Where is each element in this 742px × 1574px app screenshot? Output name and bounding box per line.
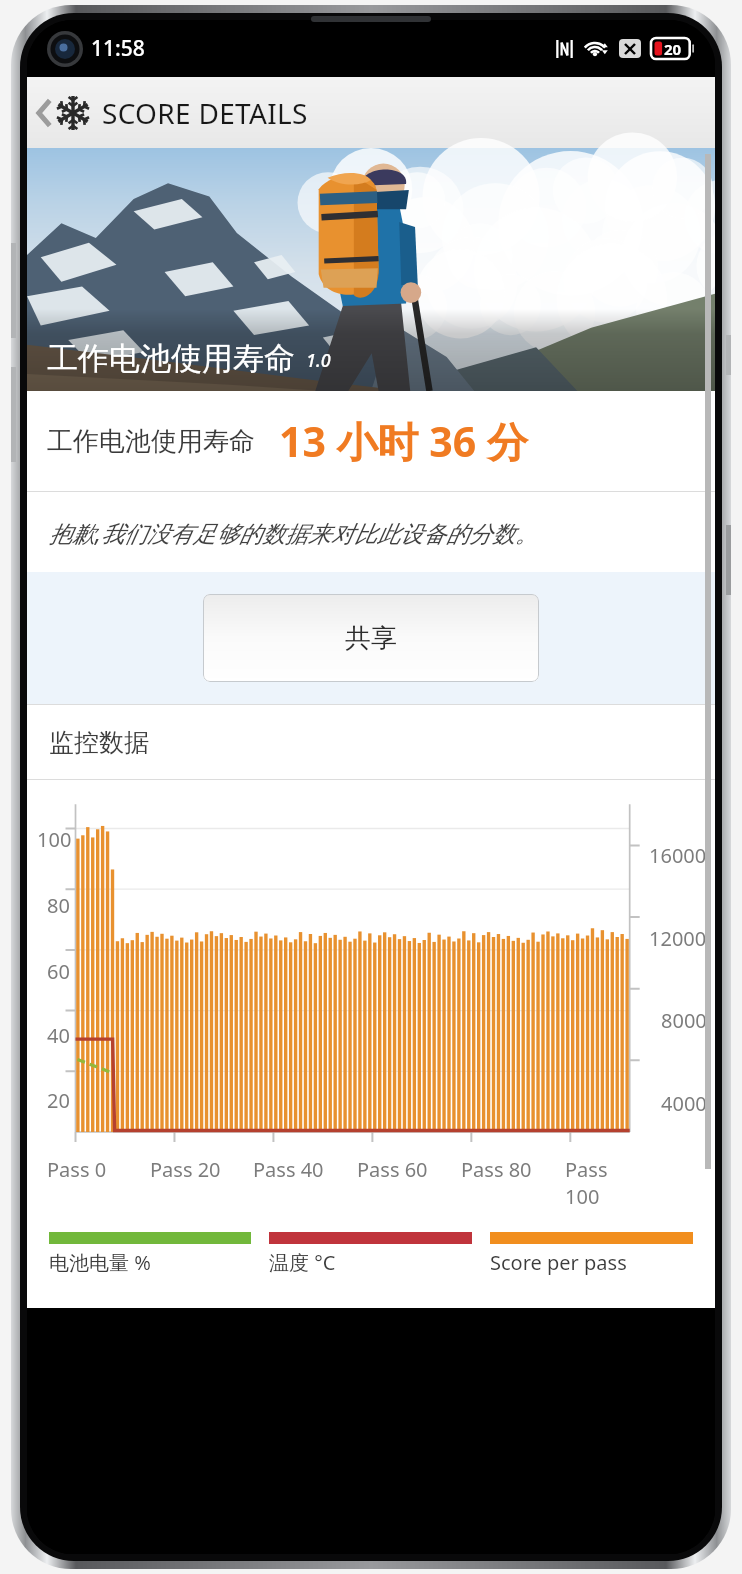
staticText: 100 (37, 826, 72, 853)
staticText: SCORE DETAILS (102, 94, 308, 132)
staticText: 共享 (345, 622, 397, 655)
button[interactable]: Back (31, 88, 314, 138)
button[interactable]: 电池电量 % (49, 1232, 251, 1276)
staticText: Pass 100 (565, 1156, 637, 1210)
button[interactable]: 工作电池使用寿命 (27, 148, 715, 391)
staticText: 12000 (649, 925, 707, 952)
staticText: 60 (47, 958, 70, 985)
staticText: 40 (47, 1022, 70, 1049)
staticText: 11:58 (91, 34, 145, 63)
staticText: 1.0 (306, 348, 331, 373)
button[interactable]: 温度 °C (269, 1232, 472, 1276)
button[interactable]: 共享 (203, 594, 539, 682)
staticText: 4000 (661, 1090, 707, 1117)
staticText: 监控数据 (49, 727, 149, 758)
staticText: 13 小时 36 分 (279, 413, 528, 469)
staticText: 20 (664, 39, 682, 59)
staticText: 20 (47, 1087, 70, 1114)
staticText: Pass 0 (47, 1156, 107, 1183)
staticText: Pass 80 (461, 1156, 532, 1183)
staticText: Pass 40 (253, 1156, 324, 1183)
staticText: 工作电池使用寿命 (47, 425, 255, 458)
other: Back (37, 99, 52, 127)
staticText: 工作电池使用寿命 (47, 339, 295, 378)
button[interactable]: Score per pass (490, 1232, 693, 1276)
staticText: 16000 (649, 842, 707, 869)
staticText: 抱歉,我们没有足够的数据来对比此设备的分数。 (49, 517, 538, 548)
staticText: 8000 (661, 1007, 707, 1034)
staticText: Pass 60 (357, 1156, 428, 1183)
staticText: 80 (47, 892, 70, 919)
staticText: Score per pass (490, 1249, 627, 1276)
staticText: 电池电量 % (49, 1249, 151, 1276)
staticText: Pass 20 (150, 1156, 221, 1183)
staticText: 温度 °C (269, 1249, 336, 1276)
